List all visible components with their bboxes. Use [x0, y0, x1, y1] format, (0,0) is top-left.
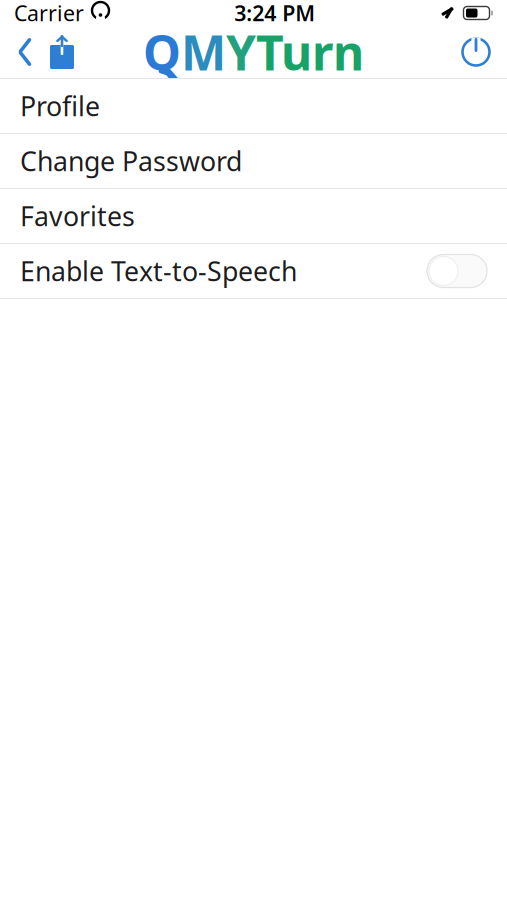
button[interactable]: Enable Text-to-Speech [0, 244, 507, 298]
staticText: 3:24 PM [234, 0, 315, 27]
staticText: Favorites [20, 198, 135, 234]
staticText: Q [143, 20, 181, 84]
button[interactable]: Share [42, 29, 82, 75]
button[interactable]: Favorites [0, 189, 507, 243]
staticText: Turn [256, 20, 364, 84]
staticText: Carrier [14, 0, 84, 27]
button[interactable]: Profile [0, 79, 507, 133]
staticText: Profile [20, 88, 100, 124]
staticText: Enable Text-to-Speech [20, 253, 297, 289]
button[interactable]: Log out [453, 29, 499, 75]
staticText: M [181, 20, 226, 84]
button[interactable]: Change Password [0, 134, 507, 188]
staticText: Y [226, 20, 256, 84]
button[interactable]: Back [8, 29, 42, 75]
staticText: Change Password [20, 143, 242, 179]
